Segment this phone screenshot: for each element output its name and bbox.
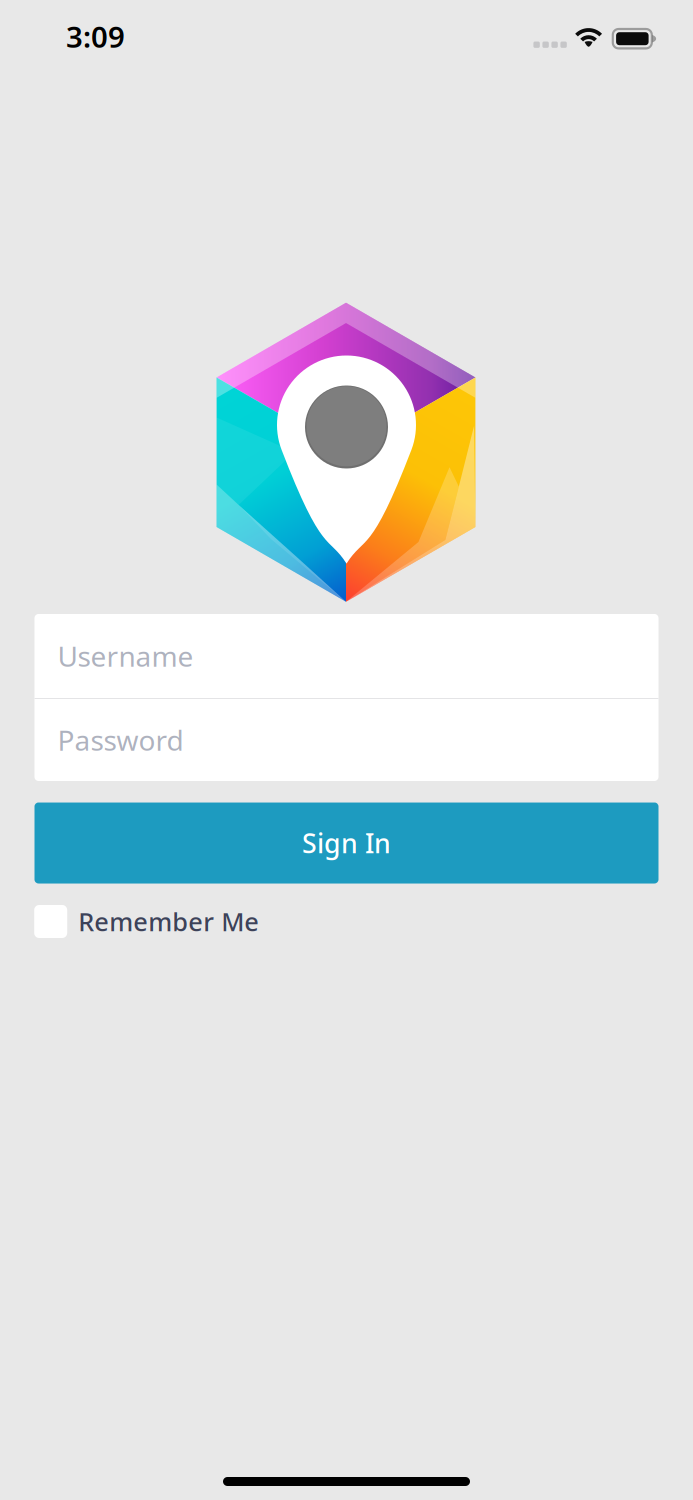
button[interactable]: Password (34, 699, 658, 781)
button[interactable]: Username (34, 614, 658, 698)
staticText: Username (57, 637, 193, 675)
staticText: Sign In (302, 825, 391, 861)
staticText: 3:09 (66, 17, 125, 56)
button[interactable]: Sign In (34, 802, 658, 883)
staticText: Remember Me (78, 905, 259, 938)
button[interactable]: Remember Me (34, 901, 324, 941)
staticText: Password (57, 721, 183, 759)
